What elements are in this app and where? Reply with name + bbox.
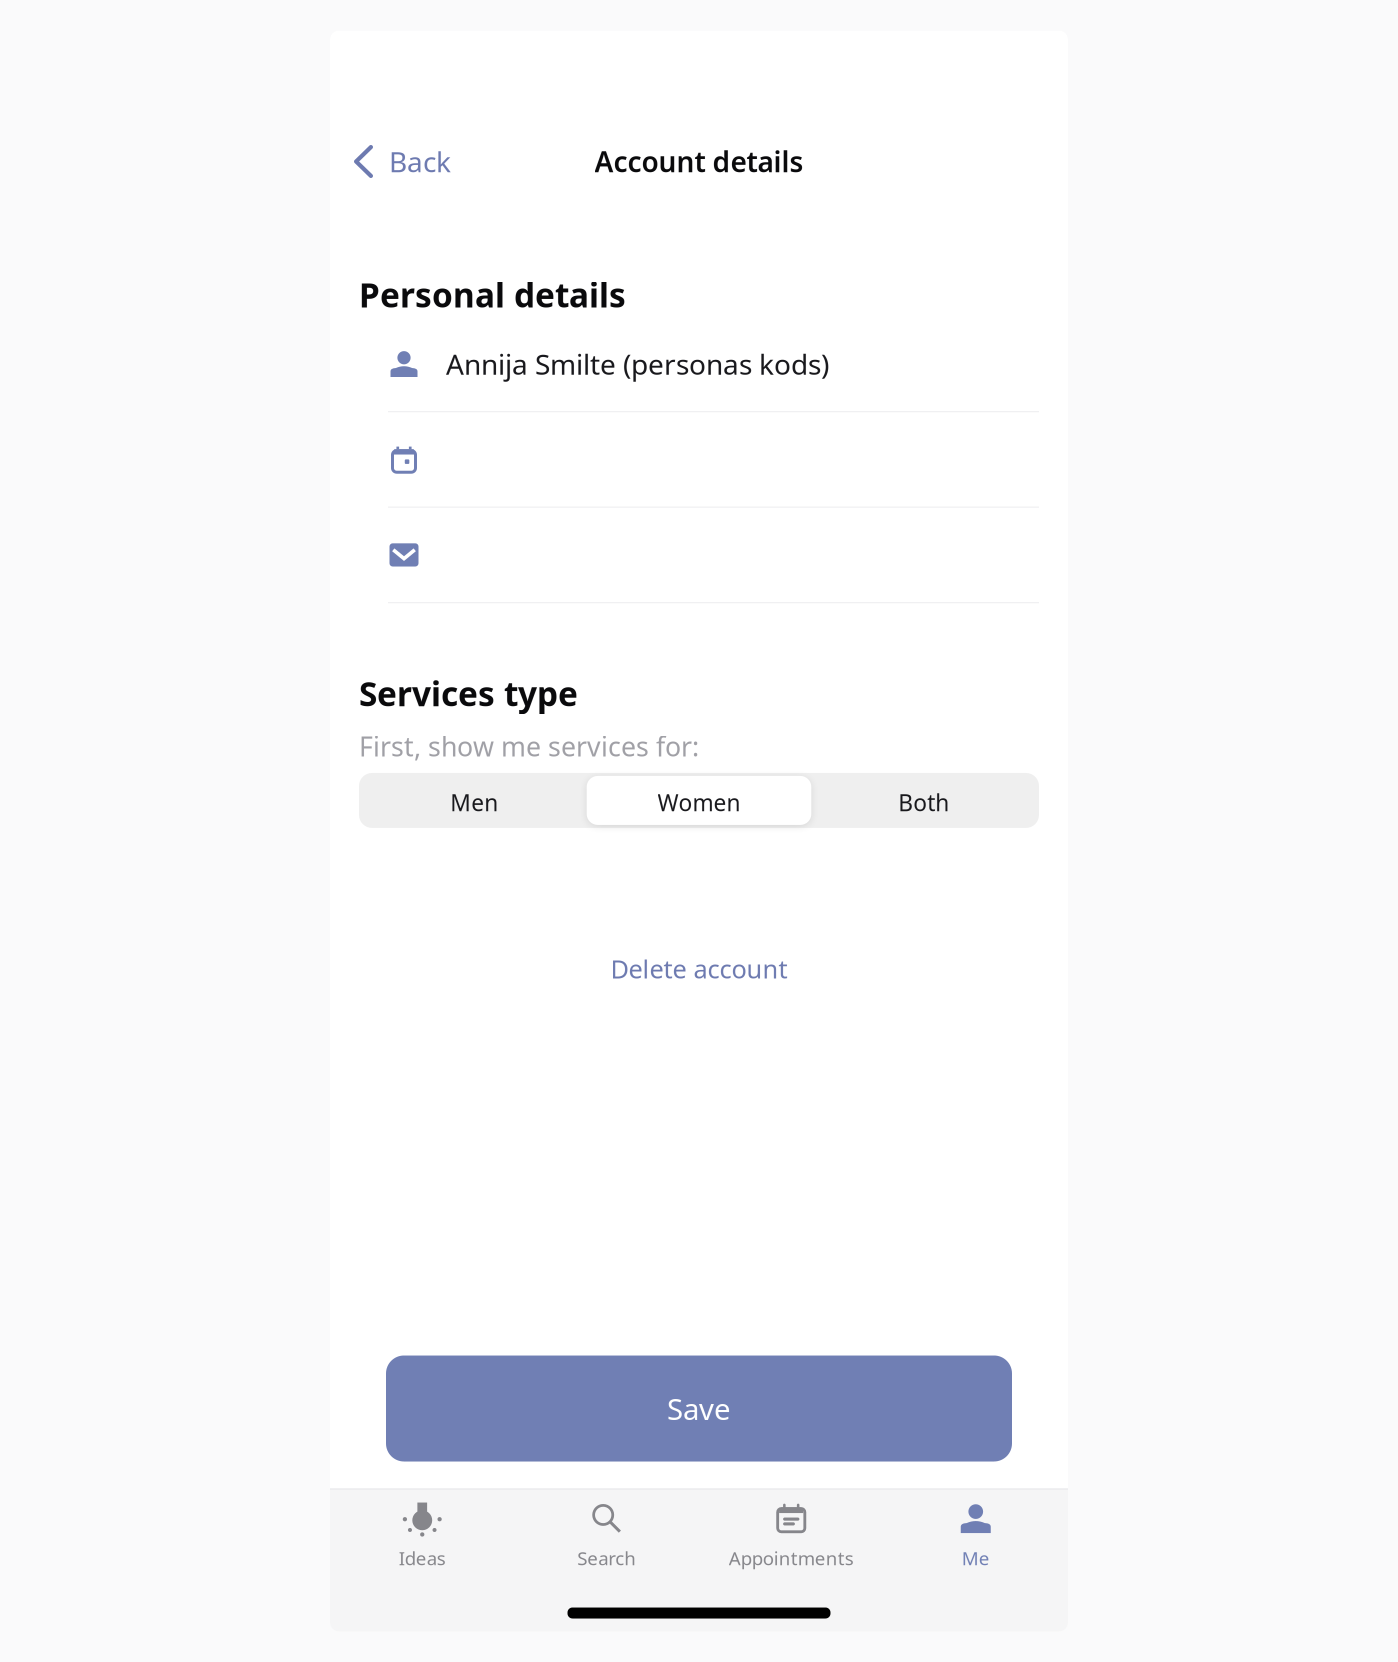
staticText: Account details: [594, 143, 803, 180]
staticText: Save: [667, 1389, 731, 1428]
button[interactable]: Delete account: [359, 943, 1039, 994]
button[interactable]: Appointments: [699, 1500, 883, 1570]
staticText: Back: [389, 143, 451, 180]
staticText: Services type: [359, 671, 578, 716]
staticText: Both: [898, 787, 949, 817]
button[interactable]: Search: [514, 1500, 699, 1570]
staticText: Ideas: [399, 1545, 446, 1570]
button[interactable]: Women: [587, 776, 811, 825]
staticText: Personal details: [359, 272, 626, 317]
staticText: Delete account: [610, 952, 787, 985]
staticText: Men: [450, 787, 498, 817]
button[interactable]: Ideas: [330, 1500, 514, 1570]
button[interactable]: Both: [811, 776, 1036, 825]
button[interactable]: Name: [388, 317, 1039, 411]
staticText: First, show me services for:: [359, 728, 699, 764]
staticText: Women: [657, 787, 740, 817]
staticText: Annija Smilte (personas kods): [446, 345, 829, 382]
button[interactable]: Save: [386, 1355, 1012, 1461]
button[interactable]: Date of birth: [388, 412, 1039, 507]
button[interactable]: Email: [388, 508, 1039, 602]
button[interactable]: Back: [352, 137, 453, 186]
staticText: Me: [962, 1545, 990, 1570]
staticText: Search: [577, 1545, 636, 1570]
staticText: Appointments: [729, 1545, 854, 1570]
button[interactable]: Me: [883, 1500, 1068, 1570]
button[interactable]: Men: [362, 776, 587, 825]
